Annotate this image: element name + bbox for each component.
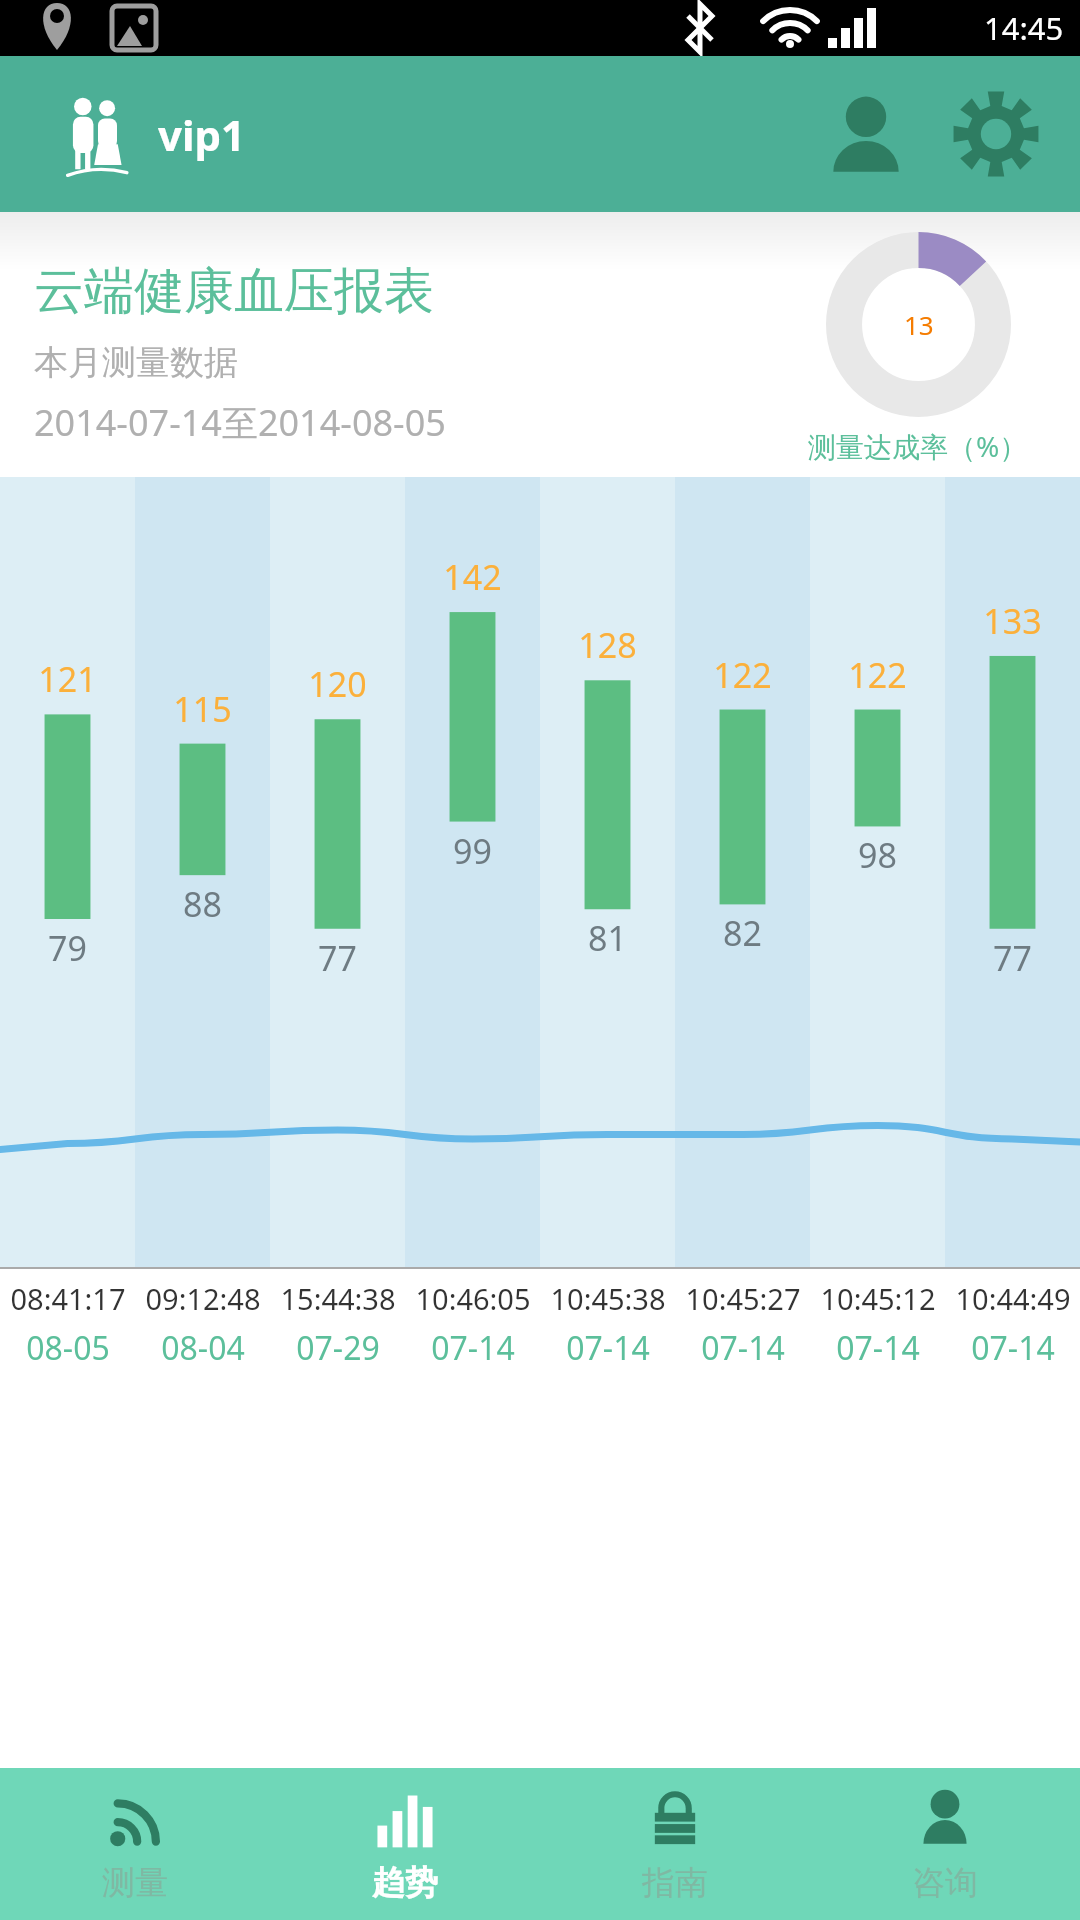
staticText: 10:44:49 bbox=[955, 1279, 1071, 1318]
staticText: 13 bbox=[904, 307, 934, 342]
staticText: vip1 bbox=[158, 106, 246, 163]
staticText: 10:45:38 bbox=[550, 1279, 666, 1318]
button[interactable]: 10:44:49 bbox=[945, 1279, 1080, 1370]
staticText: 2014-07-14至2014-08-05 bbox=[34, 398, 446, 447]
button[interactable]: 09:12:48 bbox=[135, 1279, 270, 1370]
staticText: 本月测量数据 bbox=[34, 341, 238, 384]
staticText: 指南 bbox=[642, 1862, 708, 1904]
staticText: 07-14 bbox=[836, 1326, 920, 1370]
button[interactable]: 10:45:38 bbox=[540, 1279, 675, 1370]
button[interactable]: 13 bbox=[808, 232, 1028, 465]
staticText: 121 bbox=[38, 656, 97, 702]
staticText: 79 bbox=[48, 925, 87, 971]
staticText: 10:45:27 bbox=[685, 1279, 801, 1318]
staticText: 07-14 bbox=[701, 1326, 785, 1370]
button[interactable]: 趋势 bbox=[270, 1768, 540, 1920]
staticText: 08-05 bbox=[26, 1326, 110, 1370]
staticText: 122 bbox=[848, 652, 907, 698]
staticText: 82 bbox=[723, 910, 762, 956]
staticText: 测量 bbox=[102, 1862, 168, 1904]
button[interactable]: Profile bbox=[810, 78, 922, 190]
button[interactable]: 指南 bbox=[540, 1768, 810, 1920]
staticText: 133 bbox=[983, 598, 1042, 644]
staticText: 07-14 bbox=[566, 1326, 650, 1370]
staticText: 98 bbox=[858, 832, 897, 878]
staticText: 云端健康血压报表 bbox=[34, 260, 434, 323]
staticText: 14:45 bbox=[984, 7, 1064, 49]
staticText: 77 bbox=[318, 935, 357, 981]
button[interactable]: 10:46:05 bbox=[405, 1279, 540, 1370]
staticText: 88 bbox=[183, 881, 222, 927]
button[interactable]: 咨询 bbox=[810, 1768, 1080, 1920]
staticText: 77 bbox=[993, 935, 1032, 981]
staticText: 07-14 bbox=[431, 1326, 515, 1370]
staticText: 测量达成率（%） bbox=[808, 427, 1028, 465]
staticText: 142 bbox=[443, 554, 502, 600]
staticText: 08:41:17 bbox=[10, 1279, 126, 1318]
staticText: 趋势 bbox=[372, 1862, 438, 1904]
staticText: 10:46:05 bbox=[415, 1279, 531, 1318]
button[interactable]: 15:44:38 bbox=[270, 1279, 405, 1370]
button[interactable]: 测量 bbox=[0, 1768, 270, 1920]
staticText: 07-14 bbox=[971, 1326, 1055, 1370]
staticText: 07-29 bbox=[296, 1326, 380, 1370]
staticText: 08-04 bbox=[161, 1326, 245, 1370]
staticText: 咨询 bbox=[912, 1862, 978, 1904]
button[interactable]: 10:45:12 bbox=[810, 1279, 945, 1370]
button[interactable]: 08:41:17 bbox=[0, 1279, 135, 1370]
staticText: 15:44:38 bbox=[280, 1279, 396, 1318]
button[interactable]: 10:45:27 bbox=[675, 1279, 810, 1370]
button[interactable]: vip1 bbox=[60, 83, 246, 185]
staticText: 81 bbox=[588, 915, 627, 961]
staticText: 128 bbox=[578, 622, 637, 668]
staticText: 09:12:48 bbox=[145, 1279, 261, 1318]
staticText: 115 bbox=[173, 686, 232, 732]
button[interactable]: Settings bbox=[940, 78, 1052, 190]
staticText: 122 bbox=[713, 652, 772, 698]
staticText: 120 bbox=[308, 661, 367, 707]
staticText: 99 bbox=[453, 828, 492, 874]
staticText: 10:45:12 bbox=[820, 1279, 936, 1318]
